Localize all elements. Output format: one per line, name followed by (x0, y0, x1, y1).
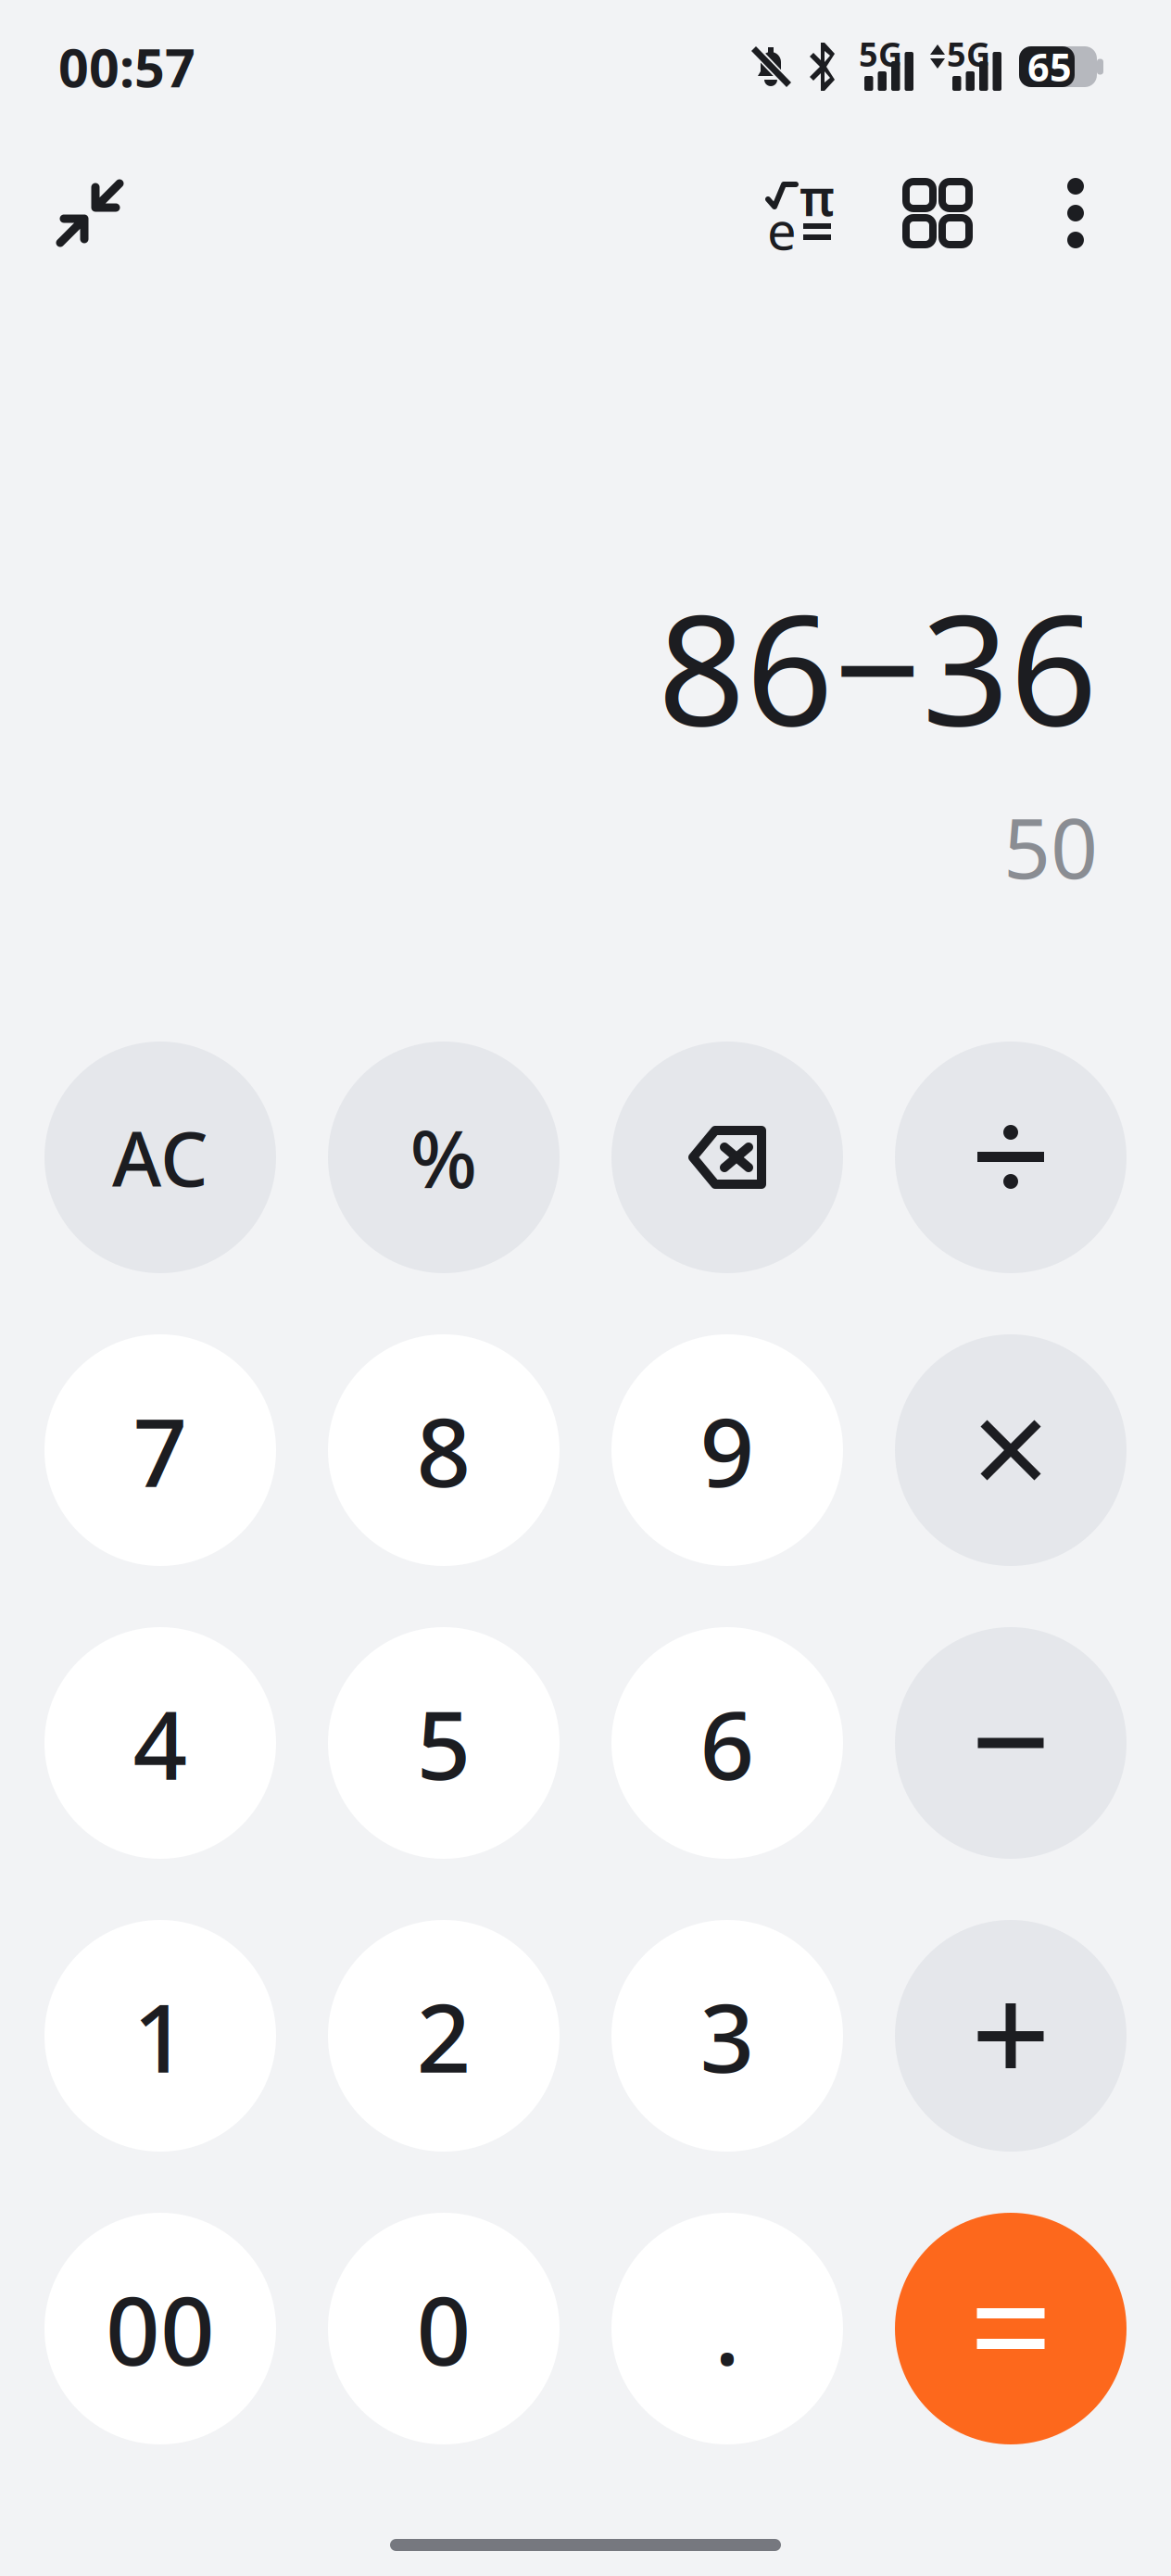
staticText: 00:57 (58, 31, 195, 102)
button[interactable]: Unit converter (890, 168, 985, 259)
button[interactable]: AC (44, 1042, 276, 1273)
button[interactable]: 4 (44, 1627, 276, 1859)
staticText: . (714, 2265, 740, 2392)
button[interactable]: 6 (611, 1627, 843, 1859)
staticText: 5 (416, 1680, 471, 1806)
staticText: 0 (416, 2265, 471, 2392)
button[interactable] (895, 2213, 1127, 2444)
staticText: 50 (1003, 792, 1098, 902)
staticText: 00 (106, 2265, 215, 2392)
button[interactable]: % (328, 1042, 560, 1273)
staticText: 6 (700, 1680, 755, 1806)
button[interactable]: 00 (44, 2213, 276, 2444)
button[interactable] (895, 1042, 1127, 1273)
staticText: 5G (947, 32, 990, 76)
button[interactable]: 1 (44, 1920, 276, 2152)
button[interactable]: Collapse (45, 169, 134, 258)
button[interactable]: 5 (328, 1627, 560, 1859)
button[interactable]: . (611, 2213, 843, 2444)
staticText: 2 (416, 1973, 471, 2099)
staticText: 3 (700, 1973, 755, 2099)
button[interactable] (895, 1627, 1127, 1859)
button[interactable]: 8 (328, 1334, 560, 1566)
staticText: e (767, 195, 797, 264)
staticText: 7 (133, 1387, 188, 1513)
staticText: 9 (700, 1387, 755, 1513)
staticText: 4 (133, 1680, 188, 1806)
staticText: 1 (133, 1973, 188, 2099)
button[interactable]: 3 (611, 1920, 843, 2152)
staticText: 86−36 (658, 564, 1098, 768)
staticText: π (800, 164, 835, 229)
staticText: 65 (1027, 41, 1072, 92)
button[interactable]: 0 (328, 2213, 560, 2444)
button[interactable] (895, 1334, 1127, 1566)
staticText: AC (112, 1107, 208, 1207)
staticText: 8 (416, 1387, 471, 1513)
button[interactable]: 2 (328, 1920, 560, 2152)
button[interactable]: 7 (44, 1334, 276, 1566)
button[interactable] (611, 1042, 843, 1273)
staticText: % (410, 1105, 478, 1210)
button[interactable]: Scientific mode (753, 171, 846, 255)
button[interactable] (895, 1920, 1127, 2152)
button[interactable]: More options (1046, 168, 1105, 259)
staticText: 5G (859, 32, 902, 76)
button[interactable]: 9 (611, 1334, 843, 1566)
